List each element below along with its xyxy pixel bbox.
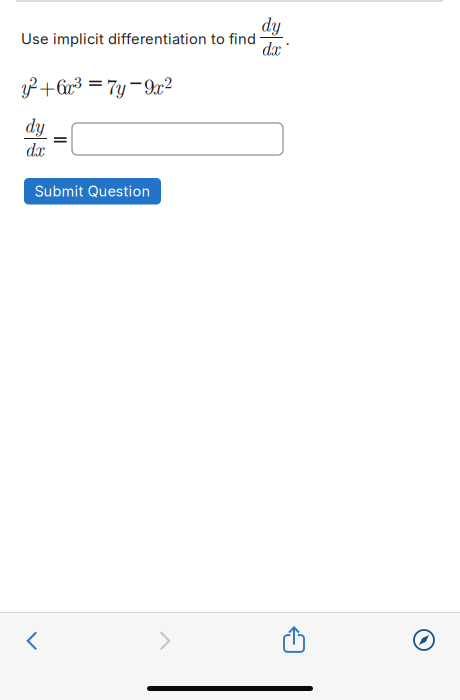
staticText: x: [63, 70, 73, 101]
staticText: Submit Question: [34, 182, 150, 200]
staticText: dx: [260, 33, 279, 61]
staticText: dy: [24, 110, 44, 138]
staticText: dx: [24, 134, 43, 162]
staticText: 9: [144, 70, 155, 101]
staticText: y: [115, 70, 125, 101]
button[interactable]: Back: [1, 619, 63, 663]
staticText: 3: [74, 70, 82, 93]
button[interactable]: Tabs: [393, 618, 455, 662]
staticText: 6: [56, 70, 67, 101]
staticText: 2: [30, 70, 38, 93]
staticText: 7: [106, 70, 117, 101]
staticText: y: [20, 70, 30, 101]
button[interactable]: Submit Question: [24, 178, 161, 204]
staticText: x: [152, 70, 162, 101]
button[interactable]: Share: [263, 617, 325, 661]
staticText: Use implicit differentiation to find: [21, 30, 256, 48]
staticText: 2: [164, 70, 172, 93]
button[interactable]: Forward: [134, 619, 196, 663]
staticText: dy: [260, 9, 280, 37]
staticText: +: [39, 70, 56, 101]
staticText: .: [285, 24, 290, 50]
